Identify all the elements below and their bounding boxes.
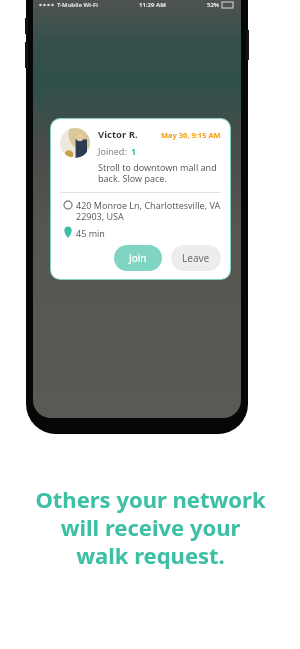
staticText: Stroll to downtown mall and back. Slow p…: [98, 161, 221, 185]
staticText: T-Mobile Wi-Fi: [57, 1, 98, 9]
staticText: 420 Monroe Ln, Charlottesville, VA 22903…: [76, 199, 221, 223]
staticText: 1: [131, 145, 137, 157]
button[interactable]: Join: [114, 245, 162, 271]
staticText: 52%: [207, 1, 220, 9]
staticText: 45 min: [76, 227, 105, 239]
button[interactable]: Leave: [171, 245, 221, 271]
staticText: Join: [129, 251, 147, 265]
staticText: 11:29 AM: [139, 1, 166, 9]
staticText: Victor R.: [98, 128, 138, 141]
other: Profile photo: [60, 128, 90, 158]
staticText: Joined:: [98, 145, 127, 157]
staticText: Leave: [182, 251, 210, 265]
staticText: May 30, 9:15 AM: [161, 130, 221, 140]
staticText: Others your network will receive your wa…: [35, 484, 266, 570]
